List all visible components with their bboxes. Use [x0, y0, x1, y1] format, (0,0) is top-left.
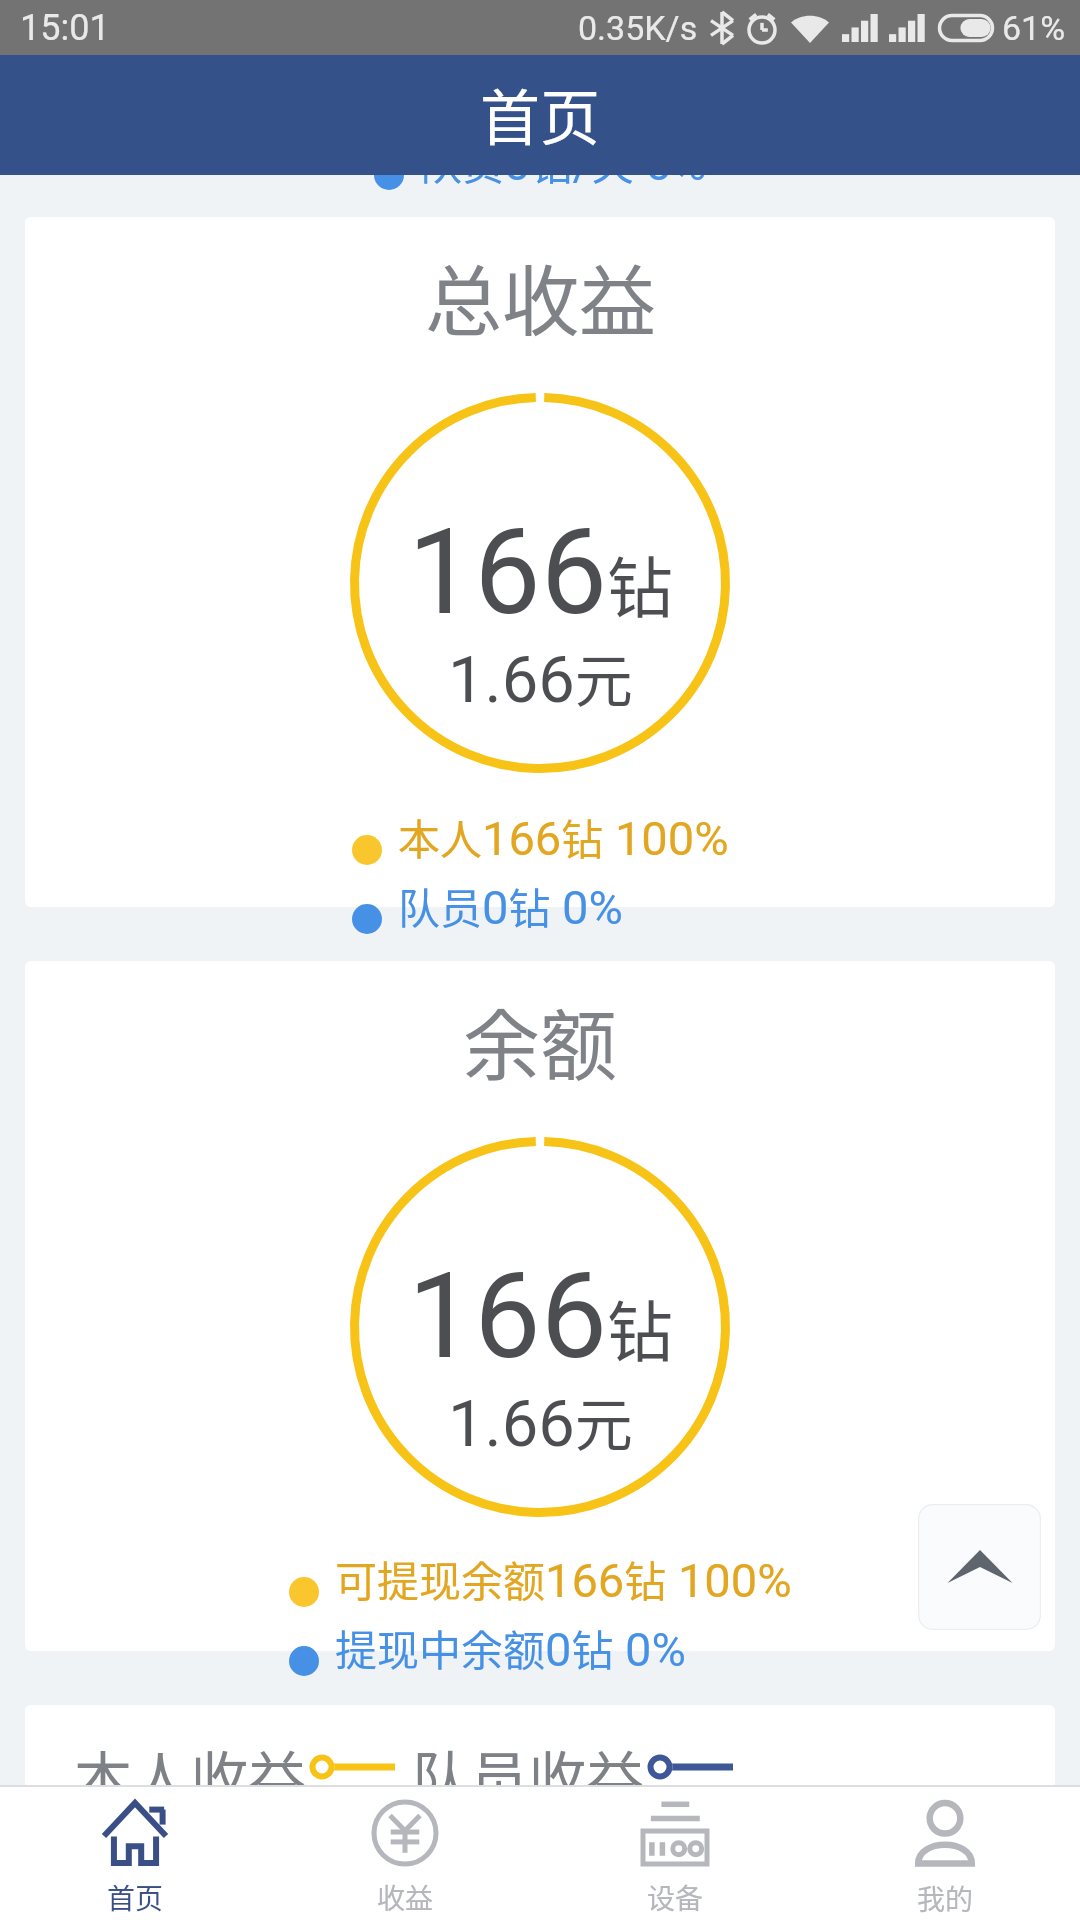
staticText: 0.35K/s: [578, 8, 698, 48]
staticText: 设备: [647, 1877, 704, 1918]
staticText: 本人166钻 100%: [398, 806, 729, 867]
staticText: 15:01: [20, 7, 110, 49]
button[interactable]: 首页: [0, 1787, 270, 1920]
staticText: 本人收益: [74, 1733, 307, 1817]
staticText: 可提现余额166钻 100%: [335, 1548, 792, 1609]
button[interactable]: 收益: [270, 1787, 540, 1920]
staticText: 总收益: [425, 241, 656, 352]
button[interactable]: Scroll to top: [918, 1504, 1041, 1630]
staticText: 提现中余额0钻 0%: [335, 1617, 686, 1678]
staticText: 首页: [480, 70, 600, 157]
staticText: 钻: [607, 535, 673, 631]
staticText: 钻: [607, 1279, 673, 1375]
staticText: 队员0钻 0%: [398, 875, 623, 936]
staticText: 1.66元: [448, 1379, 633, 1463]
button[interactable]: 设备: [540, 1787, 810, 1920]
staticText: 61%: [1002, 8, 1066, 48]
staticText: 收益: [377, 1877, 434, 1918]
staticText: 166: [408, 504, 607, 642]
staticText: 队员0钻/天 0%: [420, 131, 707, 192]
staticText: 我的: [917, 1878, 974, 1919]
staticText: 166: [408, 1248, 607, 1386]
button[interactable]: 我的: [810, 1787, 1080, 1920]
staticText: 首页: [107, 1877, 164, 1918]
staticText: 队员收益: [412, 1733, 645, 1817]
staticText: 余额: [463, 985, 617, 1096]
staticText: 1.66元: [448, 635, 633, 719]
